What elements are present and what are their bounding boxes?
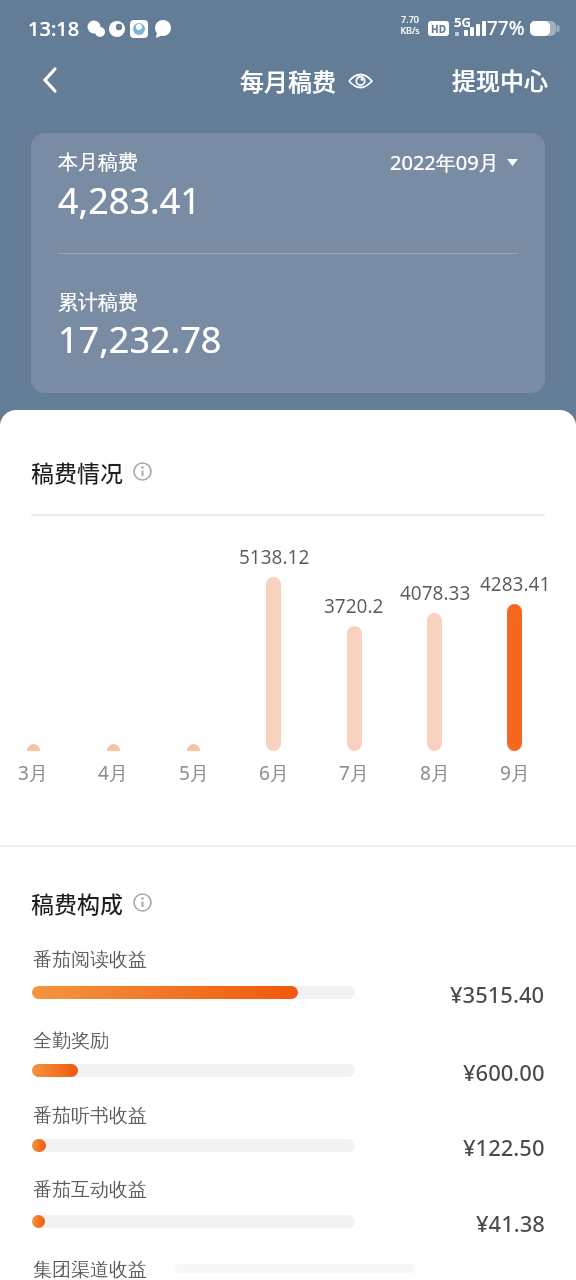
staticText: 5月 [179,760,209,786]
staticText: 8月 [420,760,450,786]
staticText: HD [431,22,446,36]
staticText: ¥600.00 [463,1057,545,1087]
staticText: 17,232.78 [58,315,222,364]
staticText: 5G [454,13,471,31]
staticText: 7月 [339,760,369,786]
staticText: ¥41.38 [476,1208,545,1238]
staticText: 番茄互动收益 [33,1178,147,1202]
staticText: ¥122.50 [463,1132,545,1162]
staticText: 6月 [259,760,289,786]
staticText: 稿费构成 [31,886,123,919]
staticText: 2022年09月 [390,149,499,176]
staticText: 稿费情况 [31,455,123,488]
staticText: 全勤奖励 [33,1029,109,1053]
staticText: ¥3515.40 [450,979,545,1009]
staticText: 3月 [18,760,48,786]
button[interactable] [349,73,372,89]
button[interactable]: 2022年09月 [390,149,518,176]
staticText: 本月稿费 [58,150,138,175]
staticText: 每月稿费 [240,63,336,98]
staticText: 3720.2 [324,593,384,619]
staticText: 提现中心 [452,62,548,97]
staticText: 番茄阅读收益 [33,948,147,972]
staticText: 4月 [98,760,128,786]
staticText: 累计稿费 [58,290,138,315]
staticText: 5138.12 [239,544,310,570]
staticText: 77% [487,15,525,41]
staticText: 4,283.41 [58,176,201,225]
button[interactable] [28,58,72,102]
staticText: 13:18 [28,15,80,42]
staticText: 4078.33 [400,580,471,606]
staticText: 番茄听书收益 [33,1104,147,1128]
staticText: 7.70 KB/s [396,13,424,36]
button[interactable]: 提现中心 [388,62,548,97]
staticText: 4283.41 [480,571,551,597]
staticText: 集团渠道收益 [33,1258,147,1280]
staticText: 9月 [500,760,530,786]
